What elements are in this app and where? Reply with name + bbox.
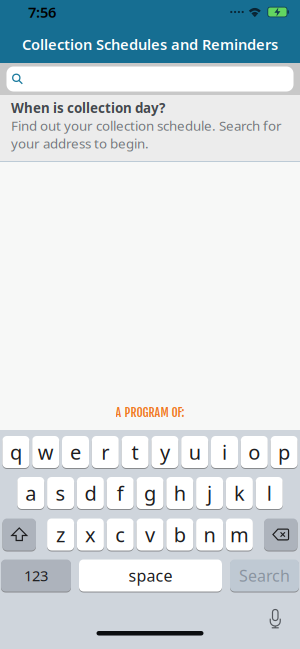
staticText: h	[174, 480, 186, 506]
staticText: b	[174, 521, 186, 548]
button[interactable]	[2, 518, 36, 551]
button[interactable]: 123	[1, 559, 71, 592]
staticText: space	[128, 565, 172, 586]
staticText: n	[204, 521, 216, 548]
staticText: y	[160, 439, 170, 465]
staticText: j	[207, 480, 212, 506]
staticText: Collection Schedules and Reminders	[22, 34, 278, 54]
button[interactable]: m	[226, 518, 253, 551]
button[interactable]: space	[79, 559, 222, 592]
button[interactable]: x	[77, 518, 104, 551]
button[interactable]: a	[17, 476, 44, 509]
staticText: q	[10, 439, 22, 465]
button[interactable]: c	[107, 518, 134, 551]
button[interactable]: e	[62, 435, 89, 468]
staticText: i	[222, 439, 227, 465]
button[interactable]: p	[271, 435, 298, 468]
staticText: 123	[24, 566, 48, 585]
button[interactable]: k	[226, 476, 253, 509]
button[interactable]: w	[32, 435, 59, 468]
staticText: k	[234, 480, 245, 506]
staticText: x	[85, 521, 96, 548]
staticText: d	[84, 480, 96, 506]
staticText: 7:56	[28, 2, 56, 22]
staticText: p	[278, 439, 290, 465]
staticText: m	[230, 521, 249, 548]
staticText: t	[132, 439, 139, 465]
staticText: c	[115, 521, 125, 548]
button[interactable]: n	[196, 518, 223, 551]
staticText: s	[56, 480, 66, 506]
button[interactable]: i	[211, 435, 238, 468]
button[interactable]: g	[136, 476, 163, 509]
staticText: Find out your collection schedule. Searc…	[11, 117, 282, 152]
staticText: When is collection day?	[11, 99, 165, 117]
button[interactable]: z	[47, 518, 74, 551]
staticText: A PROGRAM OF:	[115, 405, 184, 420]
button[interactable]: j	[196, 476, 223, 509]
button[interactable]: r	[92, 435, 119, 468]
button[interactable]: h	[166, 476, 193, 509]
staticText: z	[56, 521, 65, 548]
staticText: a	[25, 480, 36, 506]
staticText: r	[101, 439, 109, 465]
button[interactable]: d	[77, 476, 104, 509]
button[interactable]	[0, 63, 300, 95]
button[interactable]: q	[2, 435, 29, 468]
button[interactable]: l	[256, 476, 283, 509]
staticText: w	[38, 439, 54, 465]
staticText: l	[267, 480, 272, 506]
staticText: Search	[239, 565, 290, 586]
button[interactable]: y	[151, 435, 178, 468]
staticText: v	[145, 521, 155, 548]
staticText: f	[117, 480, 124, 506]
button[interactable]: t	[122, 435, 149, 468]
button[interactable]: Search	[230, 559, 299, 592]
button[interactable]: s	[47, 476, 74, 509]
button[interactable]: u	[181, 435, 208, 468]
staticText: g	[144, 480, 156, 506]
staticText: u	[189, 439, 201, 465]
button[interactable]	[264, 518, 297, 551]
button[interactable]: v	[136, 518, 163, 551]
button[interactable]: o	[241, 435, 268, 468]
button[interactable]: f	[107, 476, 134, 509]
staticText: o	[248, 439, 260, 465]
staticText: e	[70, 439, 81, 465]
button[interactable]: b	[166, 518, 193, 551]
